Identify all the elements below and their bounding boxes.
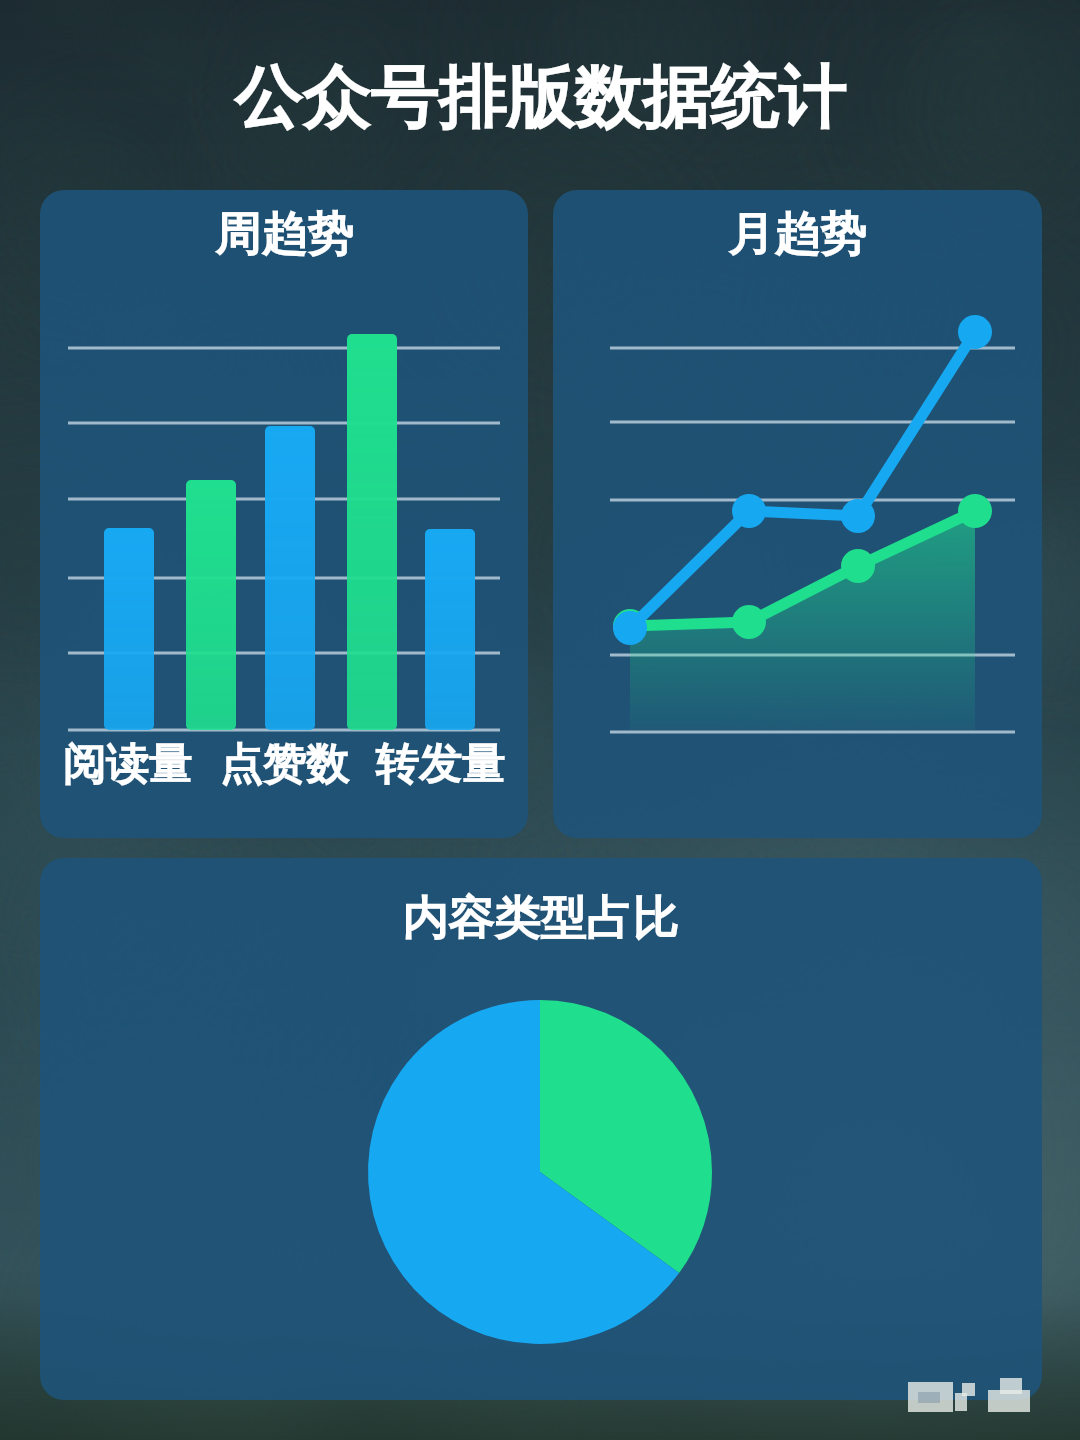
button[interactable]: 公众号排版数据统计 <box>0 0 1080 1440</box>
